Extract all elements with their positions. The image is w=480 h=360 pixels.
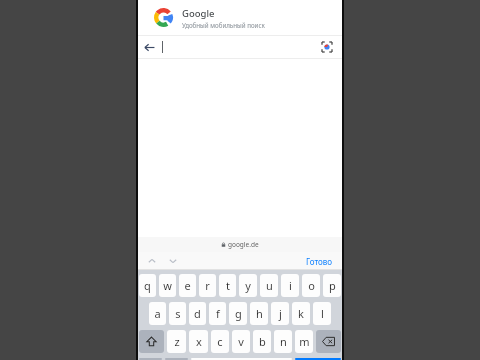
staticText: m <box>299 334 310 349</box>
button[interactable]: n <box>274 330 292 353</box>
staticText: p <box>329 278 336 293</box>
button[interactable]: m <box>295 330 313 353</box>
button[interactable]: Search <box>295 358 341 360</box>
staticText: i <box>289 278 292 293</box>
button[interactable]: Next field <box>165 253 181 269</box>
button[interactable]: x <box>189 330 208 353</box>
staticText: o <box>308 278 315 293</box>
staticText: c <box>217 334 223 349</box>
button[interactable]: q <box>139 274 156 297</box>
button[interactable]: f <box>209 302 226 325</box>
button[interactable] <box>160 36 316 58</box>
button[interactable]: t <box>219 274 236 297</box>
staticText: f <box>216 306 220 321</box>
button[interactable]: o <box>302 274 320 297</box>
button[interactable]: i <box>281 274 299 297</box>
button[interactable]: l <box>313 302 331 325</box>
button[interactable]: p <box>323 274 341 297</box>
staticText: g <box>235 306 242 321</box>
staticText: y <box>245 278 251 293</box>
button[interactable]: google.de <box>138 237 342 252</box>
staticText: z <box>174 334 180 349</box>
staticText: a <box>154 306 161 321</box>
staticText: x <box>196 334 202 349</box>
button[interactable]: k <box>292 302 310 325</box>
button[interactable]: c <box>211 330 229 353</box>
staticText: s <box>175 306 181 321</box>
staticText: Google <box>182 7 215 20</box>
staticText: q <box>144 278 151 293</box>
staticText: t <box>226 278 230 293</box>
button[interactable]: Backspace <box>316 330 341 353</box>
staticText: d <box>194 306 201 321</box>
staticText: j <box>279 306 282 321</box>
button[interactable]: a <box>149 302 166 325</box>
button[interactable]: u <box>260 274 278 297</box>
button[interactable]: Back <box>138 36 160 58</box>
button[interactable]: v <box>232 330 250 353</box>
button[interactable]: w <box>159 274 176 297</box>
staticText: Готово <box>306 256 333 267</box>
button[interactable]: h <box>250 302 268 325</box>
staticText: w <box>163 278 172 293</box>
staticText: u <box>266 278 273 293</box>
staticText: e <box>184 278 191 293</box>
button[interactable]: Google Lens <box>316 36 338 58</box>
button[interactable]: Previous field <box>144 253 160 269</box>
button[interactable]: z <box>167 330 186 353</box>
staticText: v <box>238 334 244 349</box>
button[interactable]: s <box>169 302 186 325</box>
staticText: b <box>259 334 266 349</box>
staticText: google.de <box>228 240 259 249</box>
staticText: n <box>280 334 287 349</box>
button[interactable]: g <box>229 302 247 325</box>
staticText: r <box>205 278 210 293</box>
button[interactable]: y <box>239 274 257 297</box>
staticText: Удобный мобильный поиск <box>182 21 265 29</box>
button[interactable]: e <box>179 274 196 297</box>
button[interactable]: Shift <box>139 330 164 353</box>
staticText: h <box>256 306 263 321</box>
staticText: l <box>321 306 324 321</box>
button[interactable]: b <box>253 330 271 353</box>
staticText: k <box>298 306 304 321</box>
button[interactable]: j <box>271 302 289 325</box>
button[interactable]: Google <box>138 0 342 35</box>
button[interactable]: d <box>189 302 206 325</box>
button[interactable]: r <box>199 274 216 297</box>
button[interactable]: Готово <box>303 254 336 269</box>
